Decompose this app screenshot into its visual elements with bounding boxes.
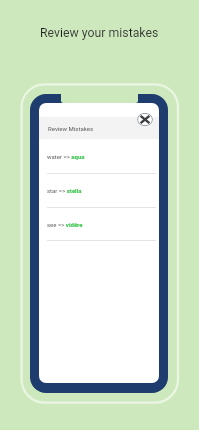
button[interactable]: see => vidēre bbox=[39, 208, 159, 241]
button[interactable]: star => stella bbox=[39, 174, 159, 208]
button[interactable]: Review Mistakes bbox=[39, 117, 159, 139]
staticText: star => stella bbox=[47, 187, 82, 194]
button[interactable]: Close bbox=[137, 113, 153, 126]
staticText: see => vidēre bbox=[47, 221, 83, 228]
staticText: Review Mistakes bbox=[48, 125, 94, 132]
staticText: water => aqua bbox=[47, 153, 85, 160]
button[interactable]: water => aqua bbox=[39, 139, 159, 174]
staticText: Review your mistakes bbox=[40, 26, 159, 40]
